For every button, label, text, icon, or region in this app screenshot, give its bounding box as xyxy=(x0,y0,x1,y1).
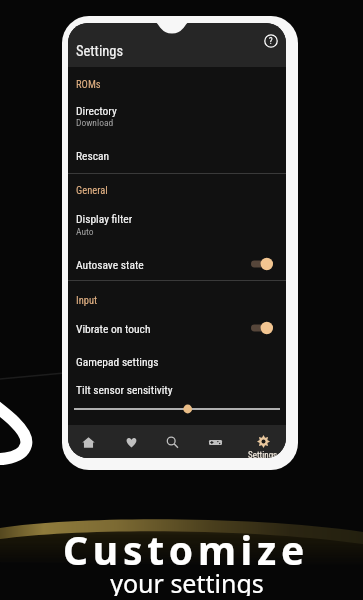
button[interactable] xyxy=(68,95,286,125)
button[interactable]: Toggle xyxy=(250,256,274,272)
staticText: Auto xyxy=(76,226,94,237)
staticText: General xyxy=(76,184,108,196)
button[interactable] xyxy=(68,346,286,376)
button[interactable] xyxy=(68,140,286,170)
button[interactable] xyxy=(68,374,286,404)
staticText: Display filter xyxy=(76,212,133,225)
staticText: your settings xyxy=(110,566,264,596)
button[interactable] xyxy=(68,249,286,279)
staticText: Directory xyxy=(76,104,117,117)
staticText: Autosave state xyxy=(76,258,144,271)
staticText: Input xyxy=(76,294,98,306)
staticText: ? xyxy=(269,36,273,46)
staticText: Settings xyxy=(248,450,278,458)
staticText: Tilt sensor sensitivity xyxy=(76,383,173,396)
button[interactable]: Toggle xyxy=(250,320,274,336)
button[interactable]: Settings xyxy=(239,427,286,458)
button[interactable]: Favorites xyxy=(116,427,146,457)
button[interactable]: Gamepad xyxy=(200,427,230,457)
staticText: Customize xyxy=(63,523,309,573)
button[interactable]: Search xyxy=(157,427,187,457)
staticText: Rescan xyxy=(76,149,110,162)
button[interactable]: Help xyxy=(262,32,280,50)
staticText: Download xyxy=(76,117,114,128)
button[interactable]: Home xyxy=(73,427,103,457)
staticText: Settings xyxy=(76,43,124,60)
staticText: Gamepad settings xyxy=(76,355,159,368)
button[interactable] xyxy=(68,203,286,233)
button[interactable] xyxy=(68,313,286,343)
staticText: Vibrate on touch xyxy=(76,322,151,335)
staticText: ROMs xyxy=(76,78,101,90)
